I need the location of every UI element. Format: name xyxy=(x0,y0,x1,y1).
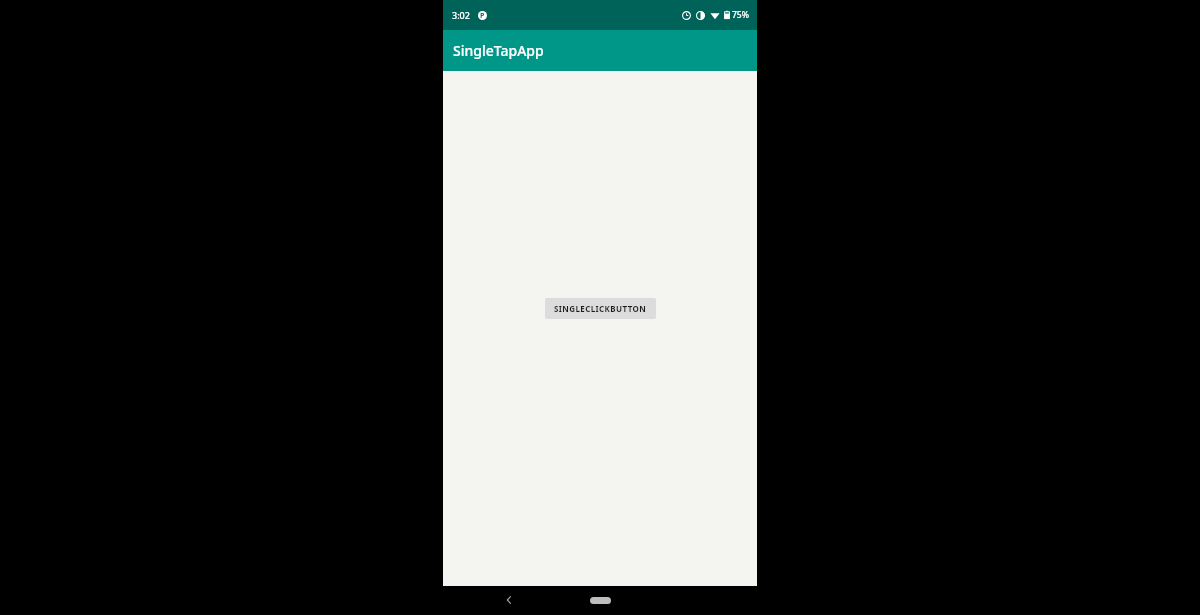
button[interactable]: Back xyxy=(497,588,521,612)
button[interactable]: SINGLECLICKBUTTON xyxy=(545,298,656,319)
staticText: SINGLECLICKBUTTON xyxy=(554,303,647,314)
staticText: SingleTapApp xyxy=(453,41,544,60)
button[interactable]: Home xyxy=(586,594,614,606)
staticText: 3:02 xyxy=(452,9,470,21)
staticText: P xyxy=(480,11,485,20)
staticText: 75% xyxy=(732,9,749,21)
